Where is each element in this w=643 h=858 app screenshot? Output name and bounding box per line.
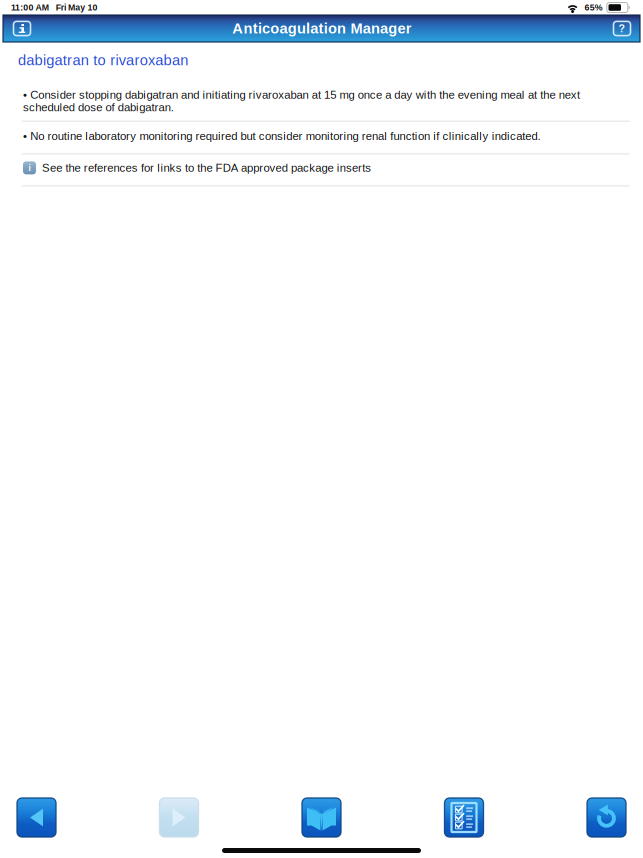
button[interactable]: Back (17, 798, 56, 837)
staticText: 65% (585, 3, 603, 12)
button[interactable]: Help (608, 16, 636, 40)
button[interactable]: Info (8, 16, 36, 40)
staticText: See the references for links to the FDA … (42, 161, 371, 174)
staticText: i (28, 163, 30, 173)
staticText: Fri May 10 (56, 3, 98, 12)
staticText: 11:00 AM (11, 3, 49, 12)
staticText: ? (618, 22, 625, 34)
staticText: Anticoagulation Manager (232, 20, 412, 37)
button[interactable]: Forward (159, 798, 198, 837)
button[interactable]: Checklist (444, 798, 483, 837)
staticText: • Consider stopping dabigatran and initi… (23, 88, 580, 114)
button[interactable]: Reference (302, 798, 341, 837)
staticText: • No routine laboratory monitoring requi… (23, 130, 541, 142)
staticText: dabigatran to rivaroxaban (18, 52, 188, 68)
button[interactable]: Start over (587, 798, 626, 837)
